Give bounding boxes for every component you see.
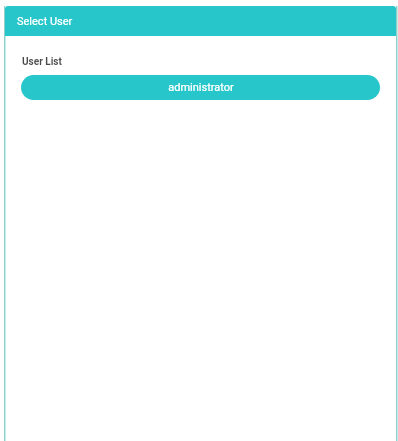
button[interactable]: Select User — [5, 6, 396, 36]
staticText: administrator — [168, 81, 234, 94]
staticText: User List — [22, 56, 62, 68]
staticText: Select User — [17, 15, 73, 28]
button[interactable]: administrator — [21, 75, 380, 100]
